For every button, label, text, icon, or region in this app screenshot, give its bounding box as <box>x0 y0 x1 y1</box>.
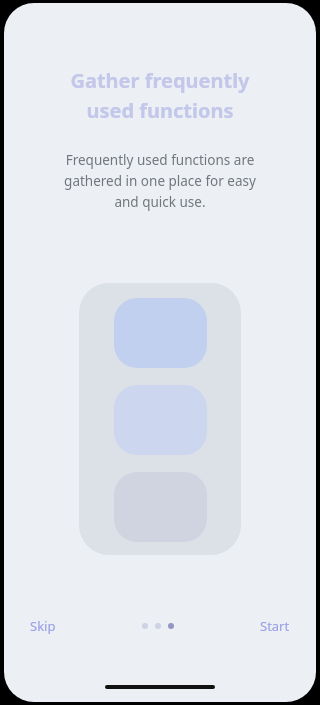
staticText: Start <box>260 617 290 635</box>
staticText: Skip <box>30 617 56 635</box>
staticText: Gather frequently used functions <box>34 67 286 124</box>
button[interactable]: Start <box>252 611 298 641</box>
staticText: Frequently used functions are gathered i… <box>28 151 292 211</box>
button[interactable]: Skip <box>22 611 64 641</box>
